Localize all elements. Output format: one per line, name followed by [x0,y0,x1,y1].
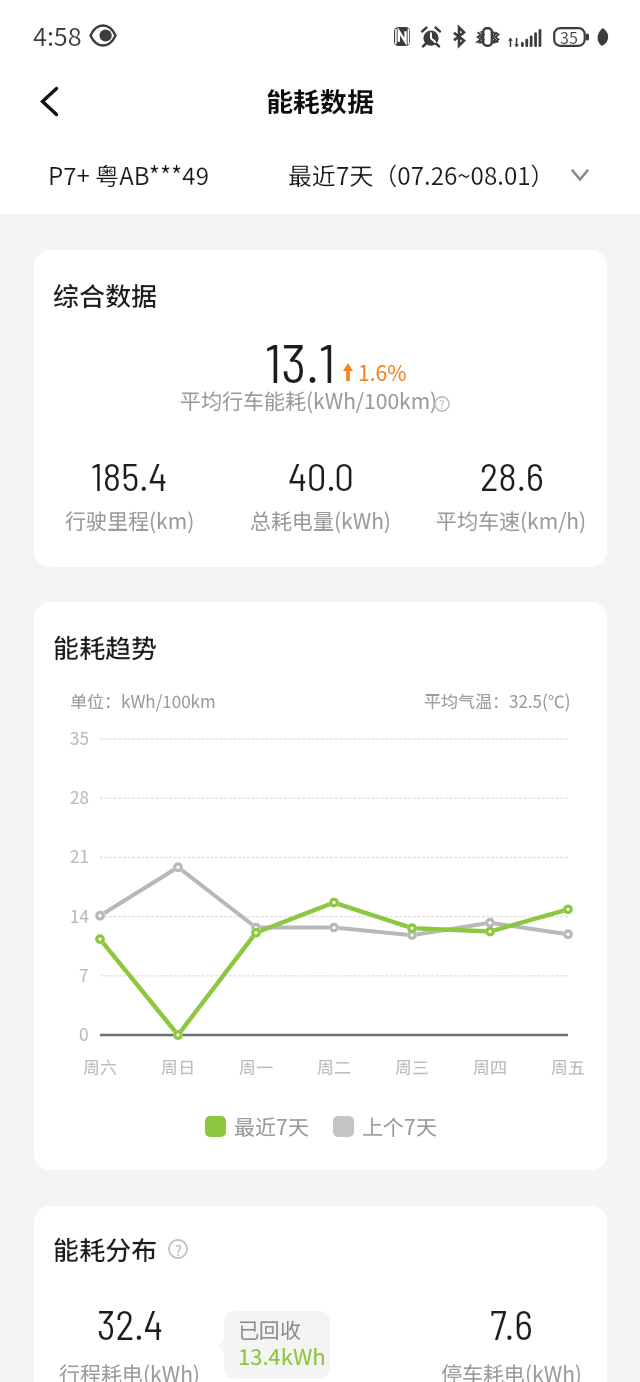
staticText: 周六 [83,1054,117,1079]
staticText: 周二 [317,1054,351,1079]
staticText: 平均气温：32.5(℃) [424,688,571,713]
staticText: 停车耗电(kWh) [441,1358,582,1382]
staticText: 28.6 [480,452,544,499]
staticText: 能耗分布 [53,1230,158,1268]
button[interactable]: 最近7天（07.26~08.01） [288,157,589,192]
staticText: 185.4 [91,452,168,499]
staticText: 周一 [239,1054,273,1079]
staticText: P7+ 粤AB***49 [48,157,209,192]
staticText: 最近7天 [234,1111,309,1141]
staticText: ? [439,396,445,412]
staticText: 1.6% [358,357,407,387]
staticText: 能耗数据 [266,81,374,120]
staticText: 13.4kWh [238,1339,326,1371]
staticText: 单位：kWh/100km [70,688,216,713]
staticText: 综合数据 [53,276,158,314]
staticText: 4:58 [33,17,82,53]
staticText: 7 [79,962,89,987]
staticText: 已回收 [238,1314,301,1344]
staticText: 32.4 [97,1300,163,1348]
staticText: 周日 [161,1054,195,1079]
staticText: 周四 [473,1054,507,1079]
staticText: 7.6 [490,1300,533,1348]
button[interactable]: Back [21,73,77,129]
staticText: 21 [70,843,89,868]
staticText: 13.1 [265,329,336,394]
staticText: 40.0 [288,452,354,499]
staticText: 总耗电量(kWh) [250,505,391,535]
staticText: 周三 [395,1054,429,1079]
staticText: 上个7天 [362,1111,437,1141]
staticText: 周五 [551,1054,585,1079]
staticText: 14 [70,903,89,928]
staticText: 能耗趋势 [53,628,158,666]
staticText: 35 [560,25,578,48]
staticText: ? [175,1239,182,1259]
staticText: 28 [70,784,89,809]
staticText: 最近7天（07.26~08.01） [288,157,555,192]
staticText: 0 [79,1021,89,1046]
staticText: 35 [70,725,89,750]
staticText: 平均行车能耗(kWh/100km) [180,385,438,415]
staticText: 行驶里程(km) [65,505,195,535]
staticText: 行程耗电(kWh) [59,1358,200,1382]
staticText: 平均车速(km/h) [436,505,587,535]
